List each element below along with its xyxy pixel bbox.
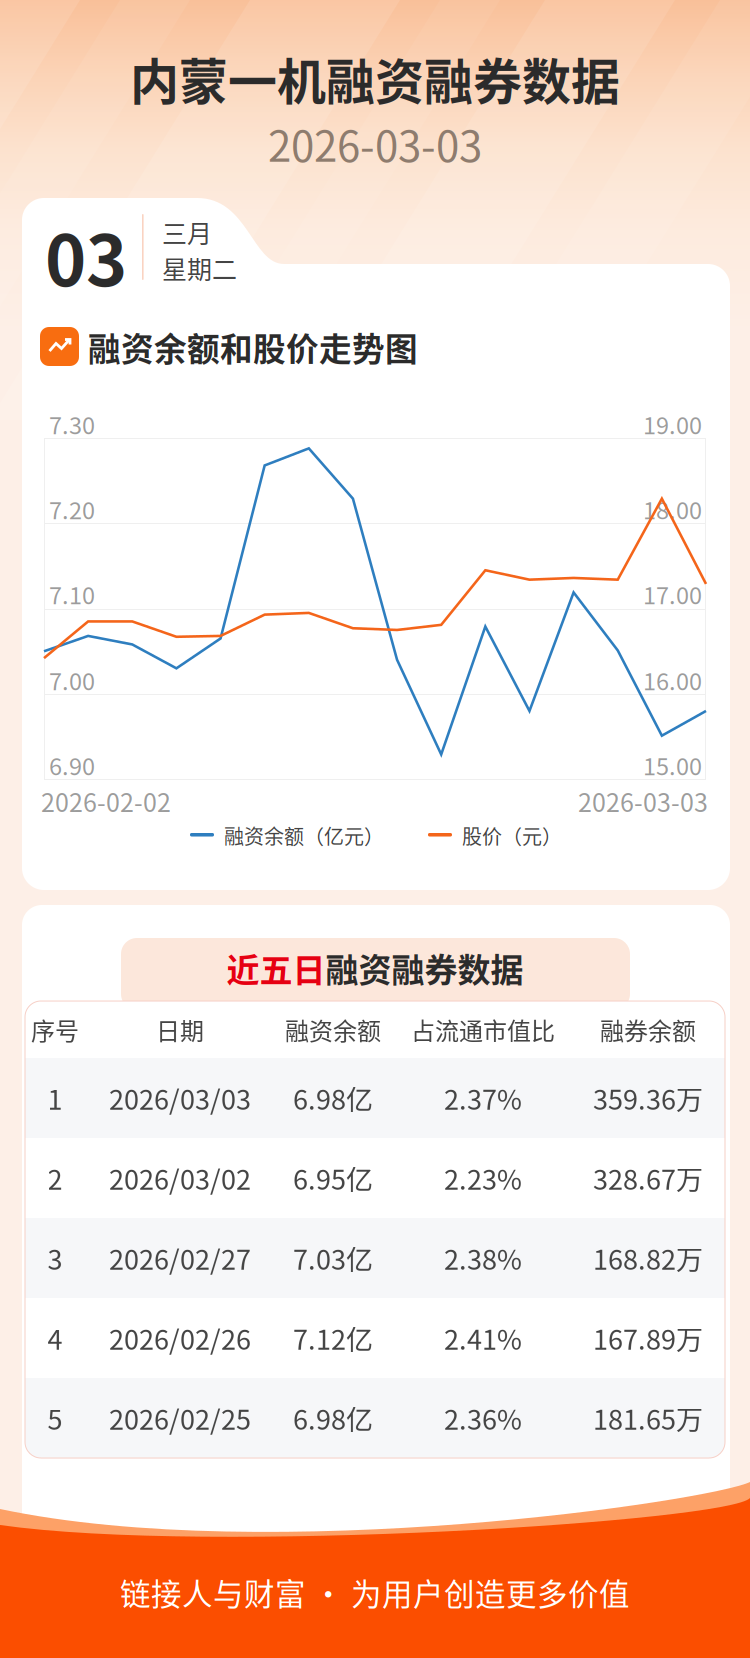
staticText: 19.00	[643, 407, 702, 441]
staticText: 3	[47, 1238, 62, 1278]
staticText: 股价（元）	[462, 821, 562, 850]
staticText: 2.36%	[444, 1398, 522, 1438]
staticText: 2	[47, 1158, 62, 1198]
staticText: 2026-03-03	[578, 783, 708, 819]
staticText: 2.37%	[444, 1078, 522, 1118]
staticText: 7.03亿	[293, 1238, 373, 1278]
staticText: 16.00	[643, 663, 702, 697]
staticText: 4	[47, 1318, 62, 1358]
staticText: 7.20	[49, 492, 95, 526]
staticText: 融券余额	[600, 1012, 696, 1047]
staticText: 7.30	[49, 407, 95, 441]
staticText: 2026/03/02	[109, 1158, 251, 1198]
staticText: 1	[47, 1078, 62, 1118]
staticText: 7.00	[49, 663, 95, 697]
staticText: 181.65万	[593, 1398, 703, 1438]
staticText: 星期二	[162, 250, 237, 286]
staticText: 359.36万	[593, 1078, 703, 1118]
staticText: 序号	[31, 1012, 79, 1047]
staticText: 三月	[162, 214, 212, 250]
staticText: 17.00	[643, 577, 702, 611]
staticText: 2026-02-02	[41, 783, 171, 819]
staticText: 2026/02/26	[109, 1318, 251, 1358]
staticText: 融资余额（亿元）	[224, 821, 384, 850]
staticText: 7.10	[49, 577, 95, 611]
staticText: 2.41%	[444, 1318, 522, 1358]
staticText: 6.95亿	[293, 1158, 373, 1198]
staticText: 2026/02/25	[109, 1398, 251, 1438]
staticText: 融资融券数据	[325, 944, 523, 992]
staticText: 168.82万	[593, 1238, 703, 1278]
staticText: 167.89万	[593, 1318, 703, 1358]
staticText: 7.12亿	[293, 1318, 373, 1358]
staticText: 6.98亿	[293, 1078, 373, 1118]
staticText: 链接人与财富 · 为用户创造更多价值	[120, 1570, 630, 1614]
staticText: 5	[47, 1398, 62, 1438]
staticText: 2026-03-03	[268, 113, 482, 174]
staticText: 6.90	[49, 748, 95, 782]
staticText: 03	[45, 205, 127, 306]
staticText: 2.38%	[444, 1238, 522, 1278]
staticText: 融资余额和股价走势图	[88, 323, 418, 371]
staticText: 18.00	[643, 492, 702, 526]
staticText: 内蒙一机融资融券数据	[130, 43, 620, 114]
staticText: 15.00	[643, 748, 702, 782]
staticText: 328.67万	[593, 1158, 703, 1198]
staticText: 占流通市值比	[411, 1012, 555, 1047]
staticText: 近五日	[226, 944, 325, 992]
staticText: 融资余额	[285, 1012, 381, 1047]
staticText: 日期	[156, 1012, 204, 1047]
staticText: 2.23%	[444, 1158, 522, 1198]
staticText: 2026/02/27	[109, 1238, 251, 1278]
staticText: 2026/03/03	[109, 1078, 251, 1118]
staticText: 6.98亿	[293, 1398, 373, 1438]
